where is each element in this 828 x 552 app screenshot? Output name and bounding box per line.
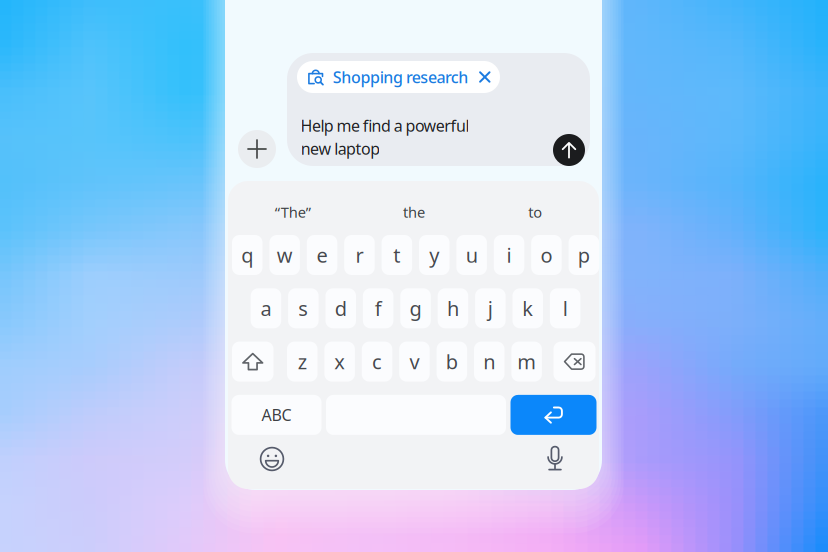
button[interactable]: a [251,288,281,328]
button[interactable]: y [419,235,449,275]
staticText: ABC [261,404,291,425]
button[interactable]: d [325,288,356,328]
button[interactable]: q [232,235,262,275]
button[interactable]: ABC [231,395,321,435]
button[interactable]: p [569,235,599,275]
staticText: y [429,242,439,268]
staticText: n [483,348,495,375]
staticText: to [528,202,542,222]
button[interactable]: v [399,342,430,382]
staticText: the [403,202,425,222]
staticText: s [298,295,308,322]
button[interactable]: o [531,235,562,275]
button[interactable]: c [362,342,392,382]
staticText: a [260,295,271,322]
staticText: g [409,295,421,322]
button[interactable]: to [475,192,596,232]
staticText: m [517,348,536,375]
staticText: j [488,295,493,322]
button[interactable]: l [550,288,580,328]
button[interactable]: g [400,288,431,328]
staticText: i [507,242,512,268]
staticText: q [241,242,253,268]
staticText: w [277,242,293,268]
button[interactable]: s [288,288,319,328]
staticText: “The” [275,202,311,222]
staticText: Help me find a powerful [301,115,469,136]
button[interactable]: Shopping research tool [297,61,500,93]
staticText: u [466,242,478,268]
staticText: l [563,295,568,322]
button[interactable]: x [324,342,355,382]
button[interactable]: n [474,342,504,382]
button[interactable]: Dictation [545,445,564,473]
button[interactable]: h [438,288,468,328]
button[interactable]: Delete [553,342,595,382]
button[interactable]: return [510,395,596,435]
button[interactable]: the [353,192,475,232]
staticText: Shopping research [333,66,468,88]
staticText: d [335,295,347,322]
staticText: p [578,242,590,268]
button[interactable]: f [363,288,393,328]
button[interactable]: z [287,342,317,382]
button[interactable]: Emoji [259,446,284,471]
staticText: h [447,295,459,322]
staticText: x [334,348,345,375]
button[interactable]: b [437,342,467,382]
staticText: r [355,242,363,268]
button[interactable]: w [269,235,300,275]
button[interactable]: j [475,288,506,328]
staticText: e [317,242,328,268]
button[interactable]: “The” [232,192,353,232]
staticText: v [409,348,419,375]
button[interactable]: e [307,235,337,275]
staticText: c [372,348,382,375]
button[interactable]: u [456,235,487,275]
staticText: new laptop [301,138,380,159]
button[interactable]: Add attachment [238,130,276,168]
button[interactable]: r [344,235,375,275]
button[interactable]: m [511,342,542,382]
button[interactable]: i [494,235,524,275]
staticText: t [393,242,400,268]
staticText: f [375,295,382,322]
button[interactable]: t [382,235,412,275]
staticText: o [540,242,552,268]
staticText: b [446,348,458,375]
button[interactable]: Send [553,134,585,166]
button[interactable]: k [512,288,543,328]
staticText: k [522,295,533,322]
button[interactable]: Shift [232,342,273,382]
staticText: z [298,348,307,375]
